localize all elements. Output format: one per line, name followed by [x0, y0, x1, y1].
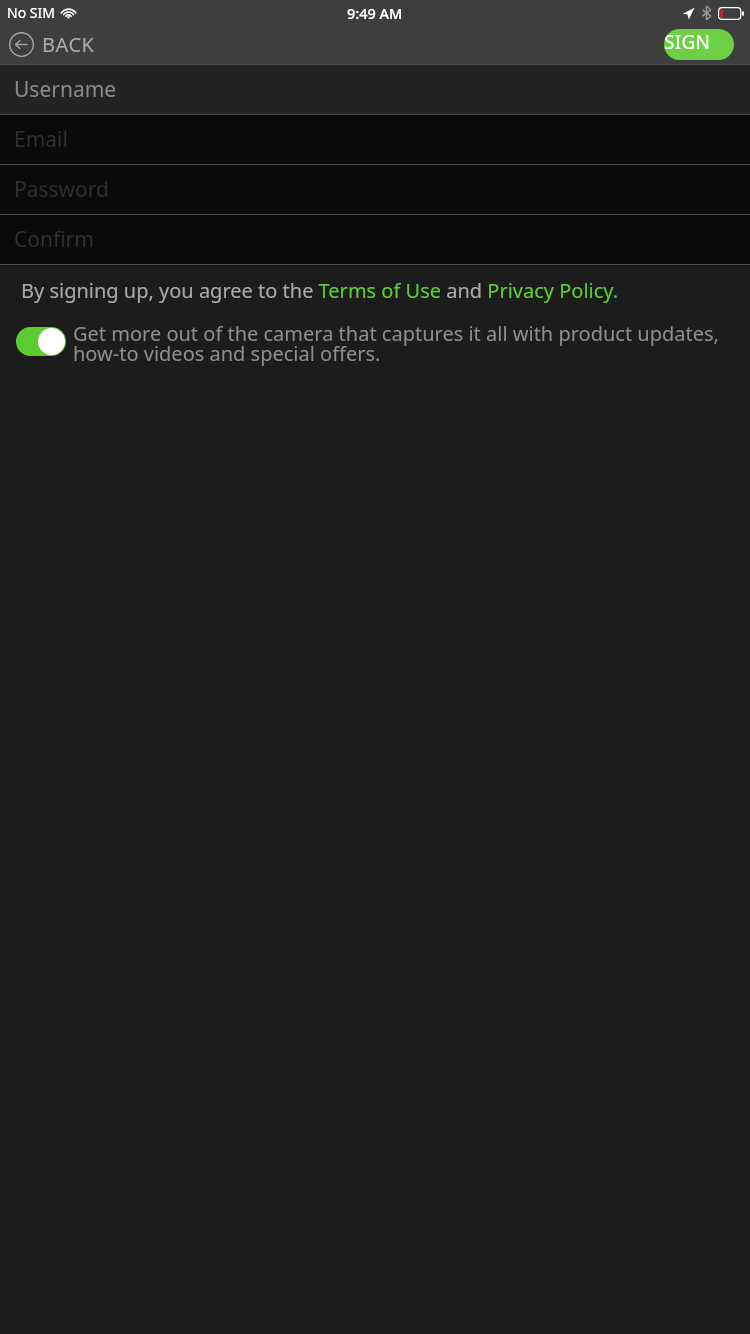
staticText: By signing up, you agree to the Terms of… [21, 277, 619, 304]
button[interactable]: Receive product updates [16, 327, 66, 356]
button[interactable]: SIGN UP [664, 29, 734, 60]
staticText: Password [14, 175, 109, 204]
button[interactable]: BACK [0, 27, 107, 62]
staticText: 9:49 AM [347, 3, 403, 23]
staticText: Username [14, 75, 117, 104]
staticText: BACK [42, 31, 95, 58]
button[interactable]: Confirm [0, 215, 750, 264]
staticText: No SIM [7, 3, 55, 22]
button[interactable]: Password [0, 165, 750, 214]
staticText: Confirm [14, 225, 94, 254]
button[interactable]: Username [0, 65, 750, 114]
staticText: Get more out of the camera that captures… [73, 320, 720, 367]
staticText: SIGN UP [664, 29, 734, 60]
staticText: Email [14, 125, 68, 154]
